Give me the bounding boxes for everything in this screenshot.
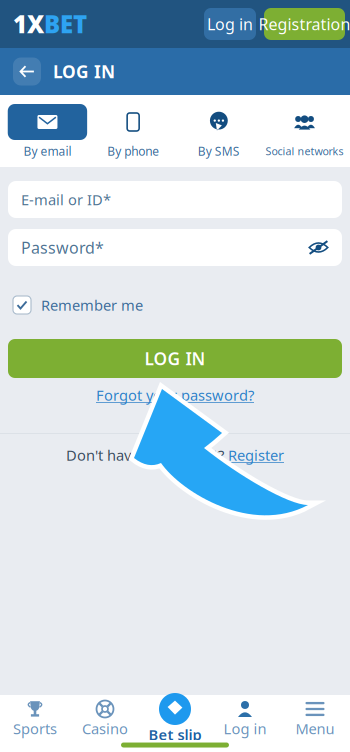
staticText: Remember me (41, 295, 143, 315)
staticText: Log in (207, 13, 253, 35)
staticText: By email (23, 143, 71, 159)
staticText: BET (44, 8, 87, 40)
staticText: Log in (223, 719, 266, 738)
staticText: LOG IN (144, 347, 205, 370)
staticText: E-mail or ID* (21, 190, 111, 209)
staticText: LOG IN (53, 60, 115, 83)
button[interactable]: Forgot your password? (96, 385, 254, 405)
button[interactable]: Bet slip (140, 695, 210, 740)
staticText: Social networks (266, 144, 344, 158)
button[interactable]: Register (228, 445, 284, 465)
staticText: Registration (258, 13, 350, 35)
staticText: Sports (13, 719, 57, 738)
staticText: Forgot your password? (96, 385, 254, 405)
button[interactable]: Back (13, 57, 41, 85)
staticText: By SMS (198, 143, 240, 159)
button[interactable]: Sports (0, 695, 70, 740)
staticText: By phone (107, 143, 159, 159)
button[interactable]: Log in (204, 8, 256, 40)
button[interactable]: Menu (280, 695, 350, 740)
button[interactable]: Remember me (8, 296, 342, 314)
staticText: Password* (21, 237, 104, 258)
staticText: Register (228, 445, 284, 465)
staticText: Bet slip (148, 725, 201, 744)
staticText: 1X (13, 8, 44, 40)
button[interactable]: By email (8, 104, 87, 160)
button[interactable]: Casino (70, 695, 140, 740)
button[interactable]: By SMS (179, 104, 259, 160)
button[interactable]: Show password (308, 240, 329, 254)
staticText: Menu (295, 719, 334, 738)
button[interactable]: LOG IN (8, 339, 342, 378)
button[interactable]: By phone (93, 104, 173, 160)
button[interactable]: Log in (210, 695, 280, 740)
staticText: Casino (82, 719, 128, 738)
button[interactable]: Social networks (265, 104, 344, 160)
button[interactable]: Registration (264, 8, 345, 40)
staticText: Don't have an account? (66, 445, 224, 465)
